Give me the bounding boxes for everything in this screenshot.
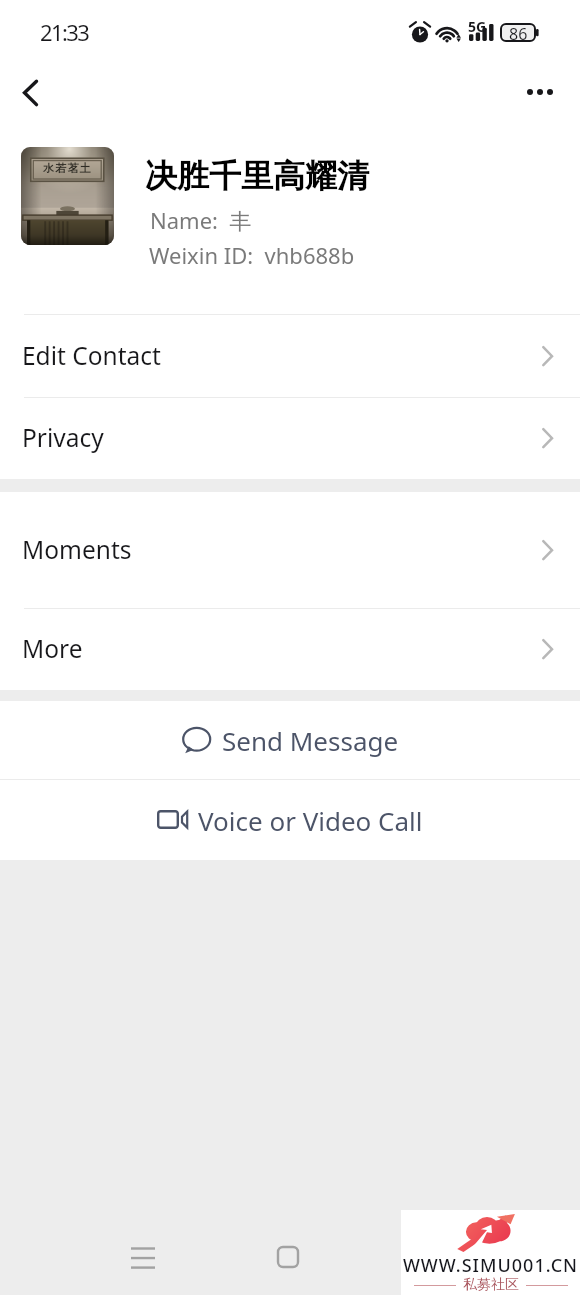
button[interactable]: Moments bbox=[0, 492, 580, 608]
staticText: 水若茗土 bbox=[43, 161, 92, 175]
staticText: 决胜千里高耀清 bbox=[145, 156, 369, 196]
button[interactable]: Privacy bbox=[0, 398, 580, 479]
staticText: Privacy bbox=[22, 421, 104, 454]
button[interactable]: More options bbox=[510, 64, 570, 122]
button[interactable]: 水若茗土 bbox=[0, 130, 580, 314]
staticText: Voice or Video Call bbox=[198, 803, 423, 838]
staticText: Name: 丰 bbox=[150, 205, 252, 235]
staticText: 21:33 bbox=[40, 17, 89, 47]
staticText: Send Message bbox=[222, 723, 399, 758]
button[interactable]: Back bbox=[1, 63, 61, 123]
staticText: 5G bbox=[468, 17, 487, 36]
staticText: 86 bbox=[509, 23, 528, 45]
button[interactable]: Voice or Video Call bbox=[0, 780, 580, 860]
button[interactable]: Home bbox=[259, 1228, 317, 1286]
button[interactable]: More bbox=[0, 609, 580, 690]
staticText: WWW.SIMU001.CN bbox=[401, 1253, 580, 1278]
staticText: Edit Contact bbox=[22, 339, 161, 372]
staticText: Weixin ID: vhb688b bbox=[149, 240, 355, 270]
staticText: More bbox=[22, 632, 83, 665]
button[interactable]: Edit Contact bbox=[0, 315, 580, 397]
staticText: 私募社区 bbox=[463, 1276, 519, 1294]
staticText: Moments bbox=[22, 533, 132, 566]
button[interactable]: Send Message bbox=[0, 701, 580, 779]
button[interactable]: Recent apps bbox=[114, 1228, 172, 1286]
